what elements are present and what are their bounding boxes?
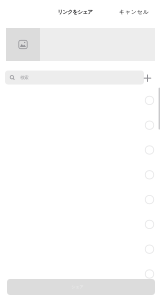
staticText: キャンセル — [119, 9, 149, 15]
button[interactable]: Add — [139, 70, 155, 86]
staticText: 検索 — [20, 75, 28, 80]
staticText: リンクをシェア — [57, 9, 92, 15]
button[interactable]: Link preview — [6, 28, 155, 61]
button[interactable]: キャンセル — [113, 4, 155, 20]
